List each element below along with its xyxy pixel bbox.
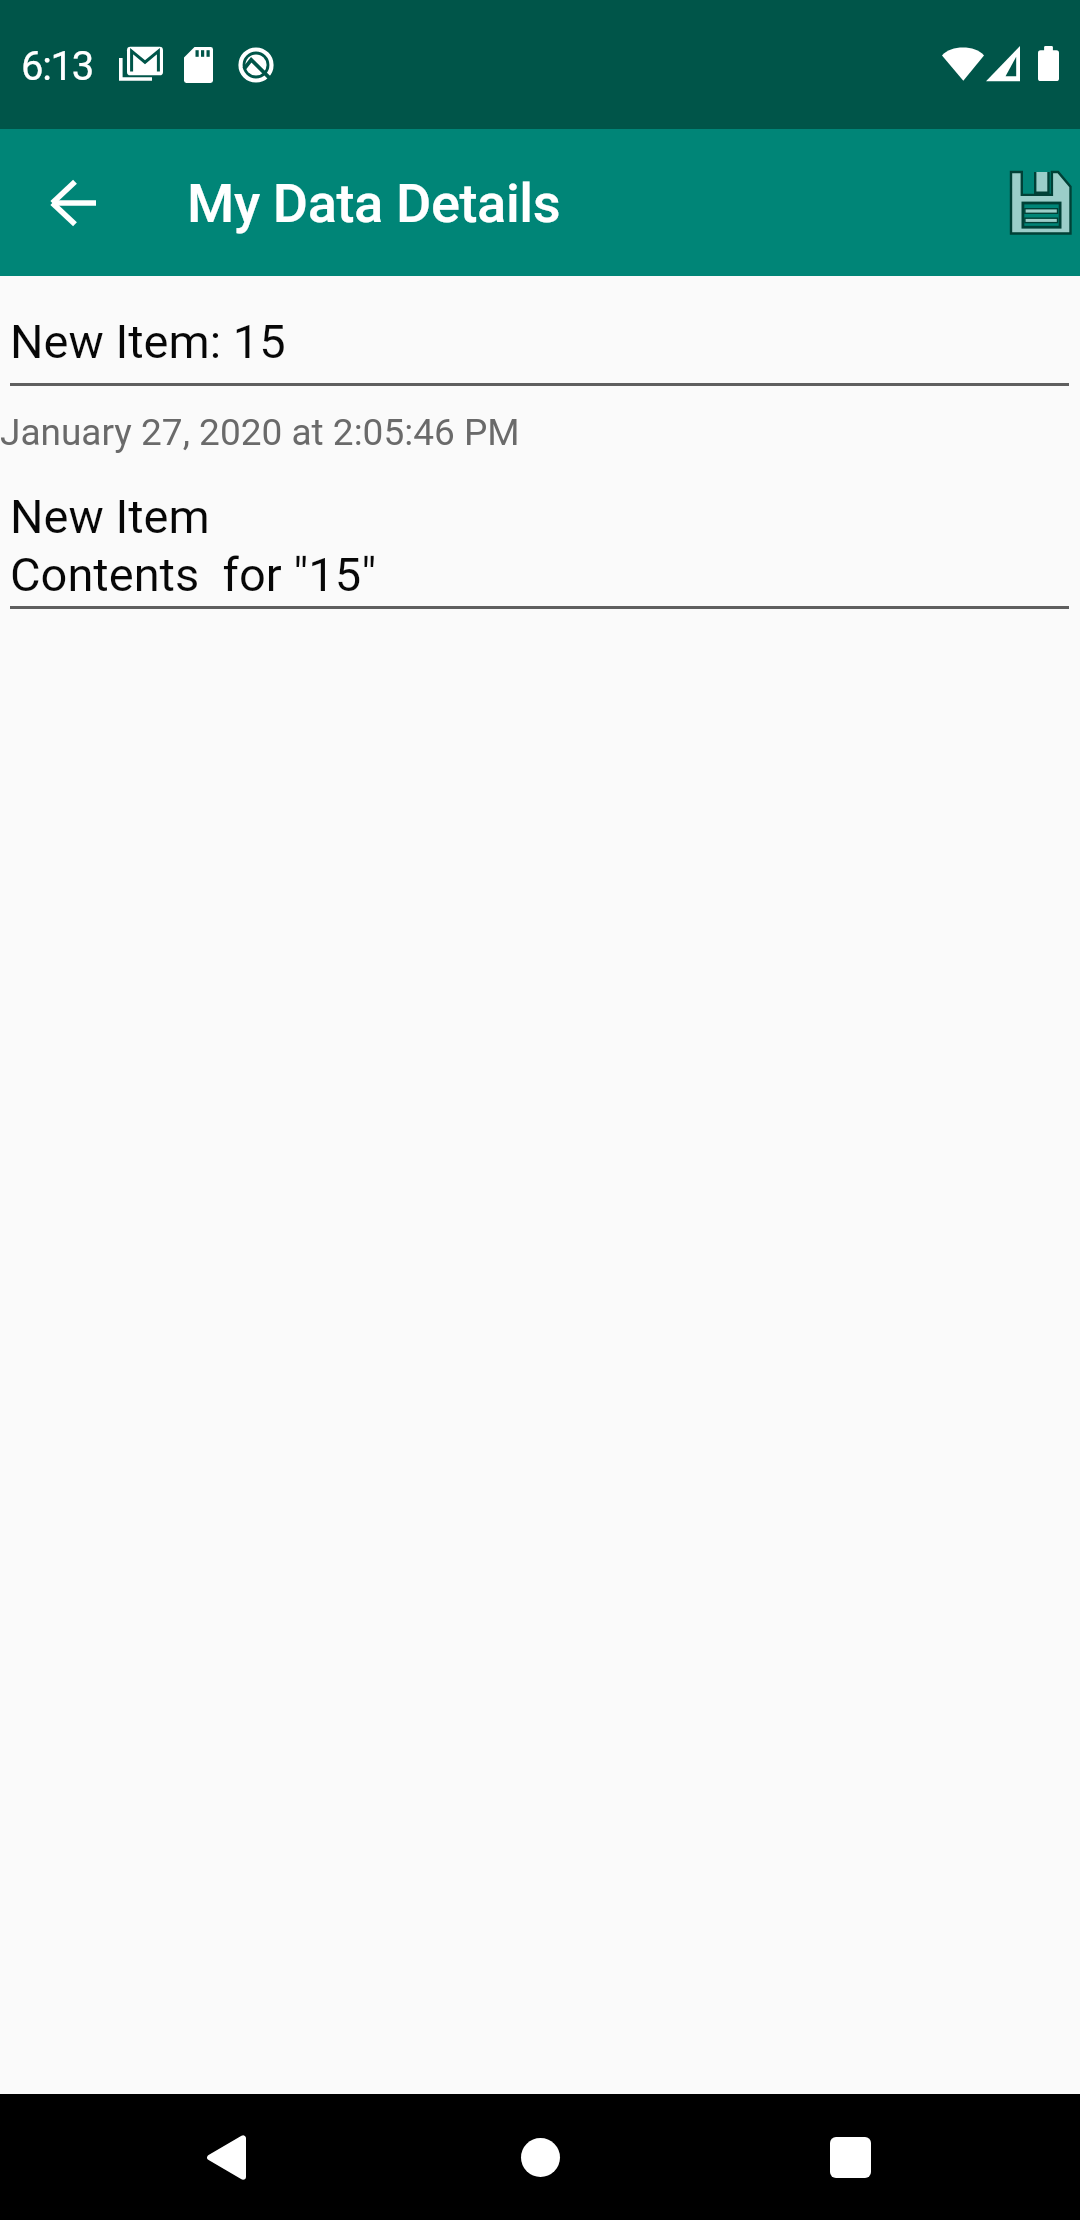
staticText: New Item: 15 — [10, 314, 286, 369]
staticText: My Data Details — [187, 172, 561, 235]
staticText: New Item Contents for "15" — [10, 489, 377, 602]
staticText: 6:13 — [21, 43, 93, 90]
button[interactable]: Recent apps — [790, 2097, 910, 2217]
button[interactable]: Home — [480, 2097, 600, 2217]
staticText: January 27, 2020 at 2:05:46 PM — [0, 411, 520, 454]
button[interactable]: Save — [989, 151, 1080, 255]
button[interactable]: Back — [165, 2097, 285, 2217]
button[interactable]: Navigate up — [25, 155, 121, 251]
